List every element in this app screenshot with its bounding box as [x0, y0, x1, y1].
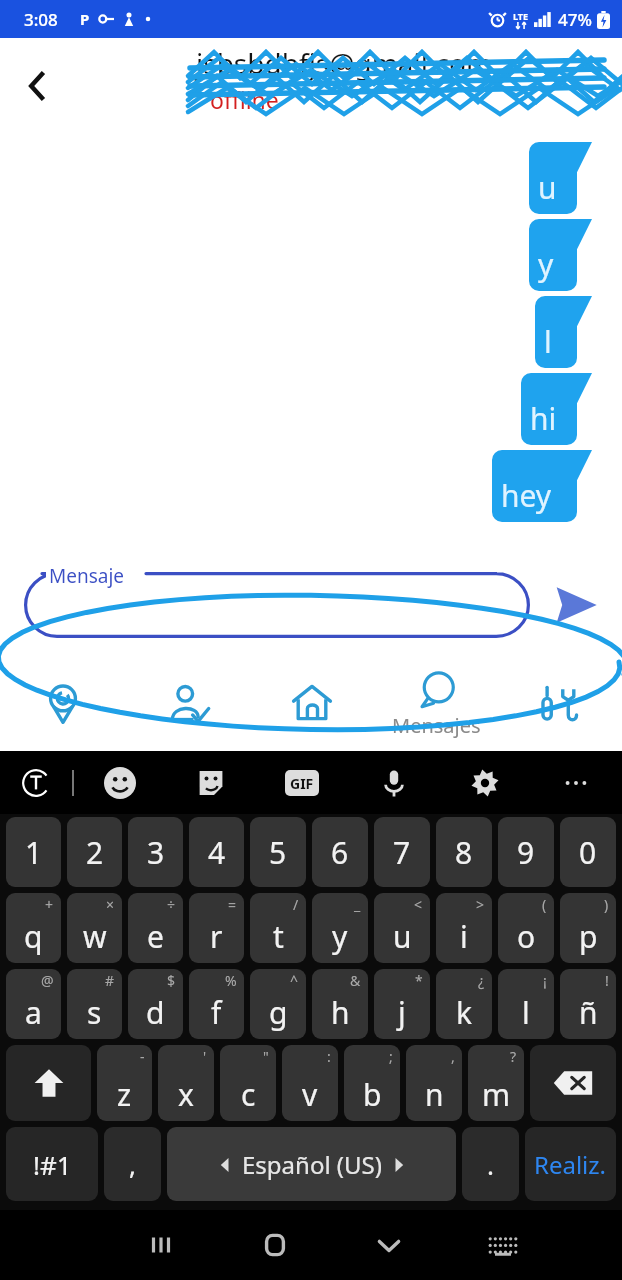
- button[interactable]: more: [545, 752, 607, 814]
- staticText: !: [605, 971, 609, 990]
- button[interactable]: mic: [363, 752, 425, 814]
- staticText: m: [482, 1074, 511, 1115]
- button[interactable]: +: [6, 893, 61, 963]
- button[interactable]: ¡: [498, 969, 554, 1039]
- button[interactable]: ×: [67, 893, 122, 963]
- button[interactable]: ^: [250, 969, 306, 1039]
- button[interactable]: %: [189, 969, 244, 1039]
- staticText: ¿: [478, 971, 485, 990]
- button[interactable]: Send: [530, 555, 622, 655]
- button[interactable]: Backspace: [530, 1045, 616, 1121]
- button[interactable]: 5: [250, 817, 306, 887]
- staticText: @: [41, 971, 54, 990]
- button[interactable]: Mensajes: [374, 655, 498, 751]
- staticText: g: [269, 992, 288, 1033]
- button[interactable]: Español (US): [167, 1127, 456, 1201]
- button[interactable]: 1: [6, 817, 61, 887]
- staticText: 7: [393, 832, 411, 873]
- button[interactable]: >: [436, 893, 492, 963]
- button[interactable]: gear: [454, 752, 516, 814]
- button[interactable]: $: [128, 969, 183, 1039]
- staticText: ': [203, 1047, 207, 1066]
- staticText: 3:08: [24, 8, 58, 31]
- button[interactable]: Realiz.: [525, 1127, 616, 1201]
- button[interactable]: Home: [218, 1210, 332, 1280]
- staticText: ^: [290, 971, 299, 990]
- staticText: GIF: [290, 774, 314, 793]
- button[interactable]: :: [282, 1045, 338, 1121]
- button[interactable]: -: [97, 1045, 152, 1121]
- button[interactable]: 9: [498, 817, 554, 887]
- button[interactable]: !#1: [6, 1127, 98, 1201]
- staticText: h: [331, 992, 350, 1033]
- button[interactable]: =: [189, 893, 244, 963]
- staticText: y: [538, 244, 554, 285]
- button[interactable]: sticker: [180, 752, 242, 814]
- staticText: ,: [451, 1047, 455, 1066]
- staticText: >: [476, 895, 485, 914]
- button[interactable]: ?: [468, 1045, 524, 1121]
- staticText: t: [273, 916, 284, 957]
- button[interactable]: 7: [374, 817, 430, 887]
- staticText: (: [542, 895, 547, 914]
- button[interactable]: Shift: [6, 1045, 91, 1121]
- button[interactable]: ': [158, 1045, 214, 1121]
- button[interactable]: 2: [67, 817, 122, 887]
- button[interactable]: Back: [10, 58, 66, 114]
- button[interactable]: 0: [560, 817, 616, 887]
- staticText: v: [302, 1074, 318, 1115]
- button[interactable]: 4: [189, 817, 244, 887]
- button[interactable]: /: [250, 893, 306, 963]
- button[interactable]: Home: [250, 655, 374, 751]
- staticText: s: [87, 992, 102, 1033]
- button[interactable]: (: [498, 893, 554, 963]
- button[interactable]: Hide keyboard: [332, 1210, 446, 1280]
- staticText: Mensajes: [392, 712, 481, 739]
- staticText: u: [393, 916, 412, 957]
- button[interactable]: <: [374, 893, 430, 963]
- button[interactable]: #: [67, 969, 122, 1039]
- button[interactable]: ): [560, 893, 616, 963]
- button[interactable]: 8: [436, 817, 492, 887]
- button[interactable]: Keyboard: [446, 1210, 560, 1280]
- button[interactable]: ÷: [128, 893, 183, 963]
- button[interactable]: gif: [271, 752, 333, 814]
- staticText: p: [579, 916, 598, 957]
- staticText: y: [332, 916, 348, 957]
- staticText: %: [225, 971, 237, 990]
- staticText: o: [517, 916, 536, 957]
- staticText: 8: [455, 832, 473, 873]
- staticText: +: [45, 895, 54, 914]
- button[interactable]: &: [312, 969, 368, 1039]
- staticText: u: [538, 167, 557, 208]
- staticText: l: [544, 321, 552, 362]
- button[interactable]: 6: [312, 817, 368, 887]
- button[interactable]: Translate: [0, 751, 72, 814]
- button[interactable]: Tools: [498, 655, 622, 751]
- button[interactable]: 3: [128, 817, 183, 887]
- button[interactable]: Contacts: [125, 655, 250, 751]
- staticText: r: [210, 916, 223, 957]
- button[interactable]: smiley: [89, 752, 151, 814]
- button[interactable]: @: [6, 969, 61, 1039]
- button[interactable]: ¿: [436, 969, 492, 1039]
- button[interactable]: _: [312, 893, 368, 963]
- staticText: hey: [501, 475, 552, 516]
- button[interactable]: Mensaje: [24, 572, 530, 638]
- staticText: e: [147, 916, 164, 957]
- button[interactable]: !: [560, 969, 616, 1039]
- staticText: :: [327, 1047, 331, 1066]
- button[interactable]: ;: [344, 1045, 400, 1121]
- button[interactable]: *: [374, 969, 430, 1039]
- button[interactable]: ,: [406, 1045, 462, 1121]
- staticText: k: [456, 992, 473, 1033]
- button[interactable]: .: [462, 1127, 519, 1201]
- button[interactable]: ": [220, 1045, 276, 1121]
- staticText: Mensaje: [49, 563, 125, 589]
- button[interactable]: Location: [0, 655, 125, 751]
- staticText: 0: [579, 832, 597, 873]
- button[interactable]: Recents: [104, 1210, 218, 1280]
- staticText: P: [80, 9, 90, 29]
- button[interactable]: ,: [104, 1127, 161, 1201]
- staticText: _: [354, 895, 361, 914]
